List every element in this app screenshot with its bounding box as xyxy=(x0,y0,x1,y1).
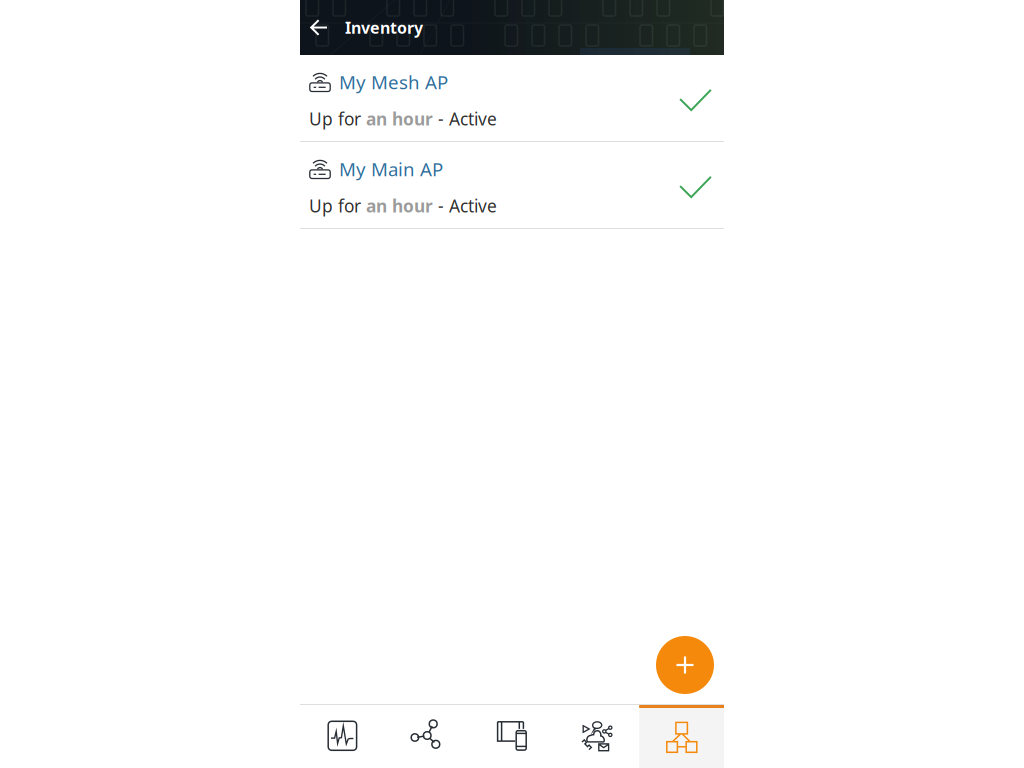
button[interactable]: Services xyxy=(554,705,639,768)
staticText: - Active xyxy=(433,107,497,130)
staticText: an hour xyxy=(366,194,433,217)
staticText: Up for xyxy=(309,194,366,217)
staticText: Up for xyxy=(309,107,366,130)
button[interactable]: My Mesh AP xyxy=(300,55,724,141)
staticText: My Mesh AP xyxy=(339,70,448,94)
button[interactable]: Monitoring xyxy=(300,705,385,768)
button[interactable]: My Main AP xyxy=(300,142,724,228)
button[interactable]: Inventory xyxy=(639,705,724,768)
staticText: an hour xyxy=(366,107,433,130)
button[interactable]: Back xyxy=(300,5,338,49)
button[interactable]: Topology xyxy=(385,705,470,768)
staticText: Inventory xyxy=(345,17,423,38)
staticText: My Main AP xyxy=(339,157,443,181)
button[interactable]: Devices xyxy=(470,705,554,768)
staticText: - Active xyxy=(433,194,497,217)
button[interactable]: Add xyxy=(656,636,714,694)
